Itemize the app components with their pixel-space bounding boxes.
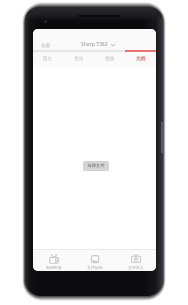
staticText: 视频 xyxy=(105,56,115,62)
button[interactable]: 图片 xyxy=(33,52,63,67)
staticText: 文件导入 xyxy=(128,265,144,270)
button[interactable]: 选择文件 xyxy=(83,161,109,171)
button[interactable]: Sharp 7362 xyxy=(81,41,115,48)
button[interactable]: 文档 xyxy=(125,52,156,67)
staticText: 选择文件 xyxy=(87,163,105,169)
button[interactable]: 文件导入 xyxy=(115,250,156,271)
staticText: 文件传输 xyxy=(87,265,103,270)
staticText: 文档 xyxy=(136,56,146,62)
staticText: 图片 xyxy=(43,56,53,62)
staticText: Sharp 7362 xyxy=(81,41,108,48)
button[interactable]: 视频 xyxy=(94,52,125,67)
button[interactable]: 电视投屏 xyxy=(33,250,74,271)
staticText: 电视投屏 xyxy=(46,265,62,270)
button[interactable]: 文件传输 xyxy=(74,250,115,271)
button[interactable]: 音乐 xyxy=(63,52,94,67)
staticText: 全部 xyxy=(41,42,51,48)
button[interactable]: 全部 xyxy=(33,40,55,50)
staticText: 音乐 xyxy=(74,56,84,62)
